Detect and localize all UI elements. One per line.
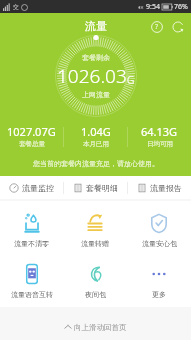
- staticText: ?: [155, 22, 159, 32]
- staticText: 日均可用: [147, 140, 173, 148]
- button[interactable]: 流量不清零: [0, 209, 63, 250]
- button[interactable]: 64.13G: [128, 124, 191, 148]
- button[interactable]: 流量报告: [128, 176, 191, 199]
- staticText: 套餐明细: [86, 183, 118, 193]
- staticText: 更多: [152, 290, 166, 299]
- button[interactable]: Help: [149, 19, 164, 34]
- button[interactable]: 流量监控: [0, 176, 63, 199]
- staticText: 流量转赠: [81, 239, 109, 248]
- staticText: 套餐总量: [19, 140, 45, 148]
- staticText: 交: [13, 3, 19, 11]
- staticText: 1026.03: [57, 63, 127, 89]
- staticText: 流量: [85, 19, 107, 33]
- staticText: 流量不清零: [14, 239, 49, 248]
- staticText: 您当前的套餐内流量充足，请放心使用。: [33, 159, 159, 168]
- button[interactable]: 流量安心包: [127, 209, 191, 250]
- staticText: 上网流量: [82, 90, 110, 99]
- button[interactable]: 1.04G: [64, 124, 127, 148]
- button[interactable]: Refresh: [170, 19, 185, 34]
- staticText: 64.13G: [141, 124, 178, 139]
- button[interactable]: 流量转赠: [63, 209, 127, 250]
- staticText: 夜间包: [85, 290, 106, 299]
- button[interactable]: 套餐明细: [64, 176, 127, 199]
- button[interactable]: 流量语音互转: [0, 260, 63, 301]
- staticText: 1.04G: [81, 124, 111, 139]
- staticText: 流量安心包: [142, 239, 177, 248]
- staticText: 套餐剩余: [82, 53, 110, 62]
- button[interactable]: 夜间包: [63, 260, 127, 301]
- staticText: 流量报告: [150, 183, 182, 193]
- staticText: 本月已用: [83, 140, 109, 148]
- staticText: G: [127, 73, 135, 87]
- staticText: 9:54: [146, 2, 160, 12]
- staticText: 1027.07G: [7, 124, 56, 139]
- button[interactable]: 1027.07G: [0, 124, 63, 148]
- button[interactable]: 更多: [127, 260, 191, 301]
- staticText: 向上滑动回首页: [74, 323, 127, 332]
- staticText: 76%: [174, 2, 188, 12]
- staticText: 流量语音互转: [11, 290, 53, 299]
- button[interactable]: 向上滑动回首页: [0, 314, 191, 340]
- staticText: 流量监控: [22, 183, 54, 193]
